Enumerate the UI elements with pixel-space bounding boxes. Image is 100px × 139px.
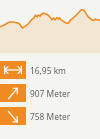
other: Ascent — [0, 84, 26, 102]
other: Distance — [0, 61, 26, 79]
staticText: 16,95 km — [30, 65, 66, 76]
button[interactable]: Ascent — [0, 84, 100, 102]
other: Descent — [0, 107, 26, 125]
staticText: 758 Meter — [30, 111, 71, 122]
button[interactable]: Distance — [0, 61, 100, 79]
button[interactable]: Descent — [0, 107, 100, 125]
staticText: 907 Meter — [30, 88, 71, 99]
